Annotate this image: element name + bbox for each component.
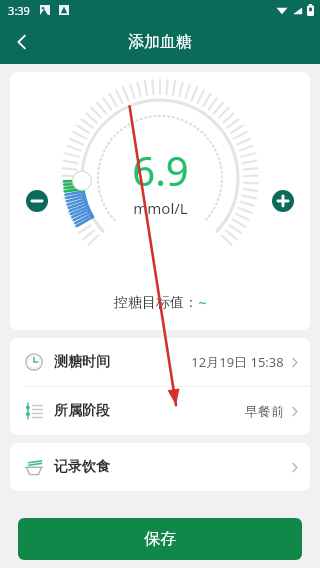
staticText: 记录饮食 [54,458,110,476]
staticText: mmol/L [133,198,188,218]
staticText: 保存 [144,529,176,549]
button[interactable]: Back [0,20,44,64]
staticText: 12月19日 15:38 [191,353,284,371]
staticText: 添加血糖 [128,32,192,52]
staticText: 3:39 [8,3,30,18]
button[interactable]: Decrease [20,184,54,218]
staticText: 控糖目标值： [114,294,198,312]
button[interactable]: 测糖时间 [10,338,310,386]
staticText: 早餐前 [245,403,284,419]
staticText: 6.9 [132,143,189,197]
button[interactable]: 所属阶段 [10,387,310,435]
button[interactable]: 保存 [18,518,302,560]
staticText: 所属阶段 [54,402,110,420]
staticText: 测糖时间 [54,353,110,371]
button[interactable]: Increase [266,184,300,218]
button[interactable]: 控糖目标值： [114,293,207,312]
staticText: ~ [198,293,207,312]
button[interactable]: 记录饮食 [10,443,310,491]
